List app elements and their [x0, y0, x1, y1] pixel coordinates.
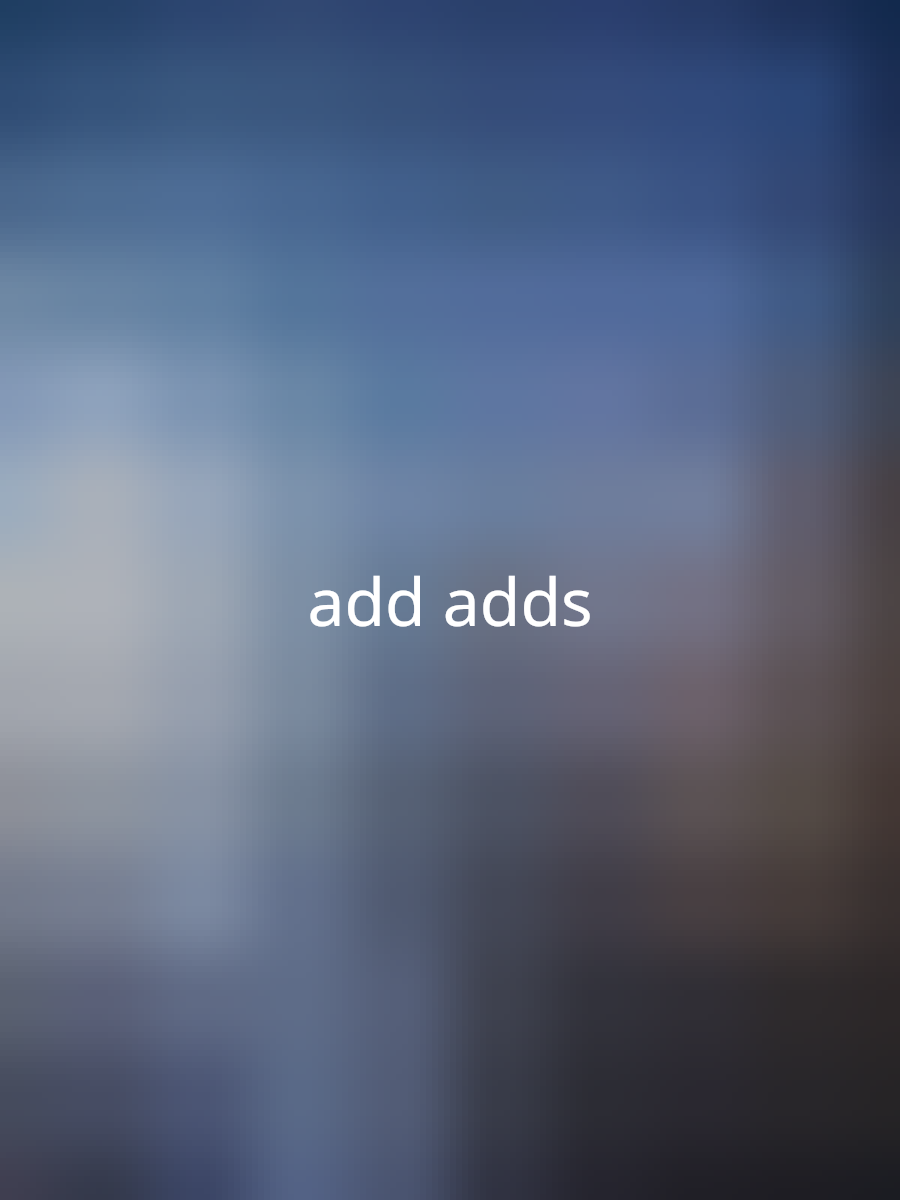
staticText: add adds — [307, 555, 593, 645]
